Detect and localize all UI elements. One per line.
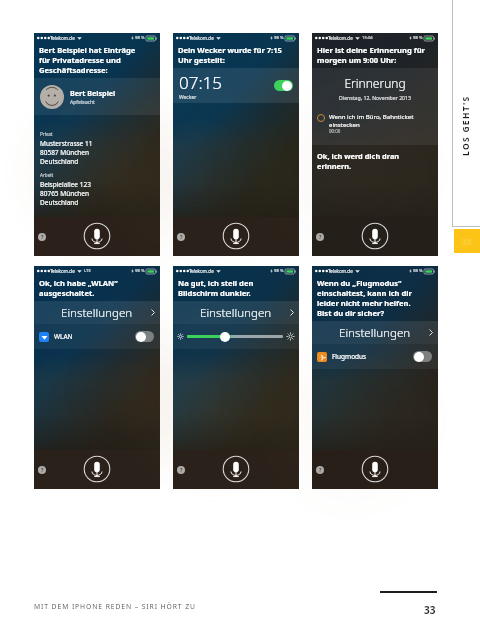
staticText: 98 % (274, 35, 284, 41)
staticText: leider nicht mehr helfen. (317, 298, 411, 308)
staticText: Apfelsucht (70, 99, 95, 106)
staticText: 15:04 (362, 35, 373, 41)
staticText: einschaltest, kann ich dir (317, 288, 412, 298)
button[interactable]: Hilfe (38, 233, 46, 241)
staticText: Telekom.de (328, 35, 353, 41)
button[interactable]: Aus (413, 351, 432, 362)
staticText: 98 % (413, 35, 423, 41)
staticText: ? (319, 467, 322, 474)
staticText: Telekom.de (189, 268, 214, 274)
staticText: Bist du dir sicher? (317, 308, 385, 318)
button[interactable]: Siri Mikrofon (83, 455, 111, 483)
staticText: 33 (424, 603, 436, 617)
staticText: 98 % (274, 268, 284, 274)
button[interactable]: Siri Mikrofon (361, 455, 389, 483)
staticText: Ok, ich habe „WLAN“ (39, 278, 118, 288)
staticText: Geschäftsadresse: (39, 65, 108, 75)
staticText: 00:00 (329, 128, 341, 134)
staticText: Beispielallee 123 (40, 180, 91, 189)
staticText: 80765 München (40, 189, 90, 198)
staticText: 98 % (135, 35, 145, 41)
staticText: Telekom.de (189, 35, 214, 41)
staticText: für Privatadresse und (39, 55, 121, 65)
staticText: Dienstag, 12. November 2013 (312, 94, 438, 101)
staticText: einstecken (329, 120, 360, 128)
staticText: erinnern. (317, 161, 352, 171)
button[interactable]: Aus (135, 331, 154, 342)
staticText: 98 % (413, 268, 423, 274)
staticText: ? (180, 467, 183, 474)
staticText: LOS GEHT'S (460, 95, 472, 156)
button[interactable]: Siri Mikrofon (361, 222, 389, 250)
staticText: Deutschland (40, 157, 79, 166)
staticText: 07:15 (179, 71, 222, 94)
button[interactable]: Hilfe (316, 233, 324, 241)
staticText: Telekom.de (50, 268, 75, 274)
button[interactable]: Einstellungen (312, 321, 438, 344)
staticText: Arbeit (40, 172, 54, 178)
staticText: ausgeschaltet. (39, 288, 95, 298)
staticText: Einstellungen (200, 305, 272, 321)
staticText: ? (41, 467, 44, 474)
button[interactable]: Einstellungen (34, 301, 160, 324)
button[interactable]: Hilfe (316, 466, 324, 474)
staticText: ? (180, 234, 183, 241)
staticText: Na gut, ich stell den (178, 278, 254, 288)
staticText: Telekom.de (50, 35, 75, 41)
staticText: Ok, ich werd dich dran (317, 151, 400, 161)
staticText: LTE (84, 268, 91, 274)
button[interactable]: Siri Mikrofon (222, 222, 250, 250)
staticText: Bert Beispiel (70, 88, 116, 98)
staticText: Wenn du „Flugmodus“ (317, 278, 402, 288)
staticText: ? (319, 234, 322, 241)
button[interactable]: Siri Mikrofon (83, 222, 111, 250)
staticText: Hier ist deine Erinnerung für (317, 45, 426, 55)
staticText: Dein Wecker wurde für 7:15 (178, 45, 282, 55)
button[interactable]: Ein (274, 80, 293, 91)
staticText: Einstellungen (61, 305, 133, 321)
staticText: Bert Beispiel hat Einträge (39, 45, 136, 55)
staticText: 98 % (135, 268, 145, 274)
button[interactable]: Hilfe (38, 466, 46, 474)
staticText: Bildschirm dunkler. (178, 288, 251, 298)
staticText: WLAN (54, 332, 73, 341)
staticText: Musterstrasse 11 (40, 139, 93, 148)
button[interactable]: Siri Mikrofon (222, 455, 250, 483)
button[interactable]: Einstellungen (173, 301, 299, 324)
staticText: Deutschland (40, 198, 79, 207)
button[interactable]: Hilfe (177, 233, 185, 241)
staticText: Wenn ich im Büro, Bahnticket (329, 112, 414, 120)
staticText: Einstellungen (339, 325, 411, 341)
staticText: morgen um 9:00 Uhr: (317, 55, 397, 65)
staticText: 80587 München (40, 148, 90, 157)
staticText: Privat (40, 131, 53, 137)
staticText: Telekom.de (328, 268, 353, 274)
staticText: Erinnerung (312, 75, 438, 91)
button[interactable]: Hilfe (177, 466, 185, 474)
staticText: Uhr gestellt: (178, 55, 225, 65)
staticText: MIT DEM IPHONE REDEN – SIRI HÖRT ZU (34, 602, 196, 611)
staticText: 33 (462, 236, 472, 247)
staticText: Wecker (179, 94, 197, 101)
staticText: ? (41, 234, 44, 241)
staticText: Flugmodus (332, 352, 367, 361)
